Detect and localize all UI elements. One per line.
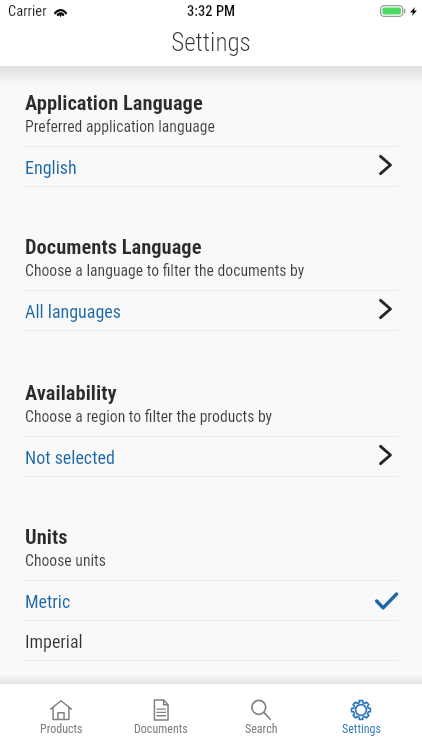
staticText: Settings	[342, 722, 381, 736]
staticText: Carrier	[8, 3, 47, 20]
button[interactable]: Products	[14, 684, 108, 750]
staticText: Documents	[134, 722, 188, 736]
button[interactable]: Not selected	[0, 437, 422, 477]
other: Open English	[379, 155, 392, 175]
staticText: Settings	[0, 28, 422, 57]
staticText: Choose a region to filter the products b…	[25, 407, 273, 425]
other: Open Not selected	[379, 445, 392, 465]
staticText: English	[25, 157, 77, 178]
button[interactable]: Documents	[114, 684, 208, 750]
other: Selected	[376, 593, 397, 609]
staticText: All languages	[25, 301, 121, 322]
staticText: Availability	[25, 381, 117, 405]
button[interactable]: Imperial	[0, 621, 422, 661]
staticText: Choose units	[25, 551, 106, 569]
button[interactable]: Search	[214, 684, 308, 750]
button[interactable]: Metric	[0, 581, 422, 621]
staticText: Search	[245, 722, 278, 736]
staticText: 3:32 PM	[187, 3, 236, 20]
staticText: Not selected	[25, 447, 115, 468]
staticText: Choose a language to filter the document…	[25, 261, 305, 279]
staticText: Units	[25, 525, 68, 549]
button[interactable]: English	[0, 147, 422, 187]
button[interactable]: Settings	[314, 684, 408, 750]
staticText: Metric	[25, 591, 71, 612]
staticText: Products	[40, 722, 83, 736]
staticText: Documents Language	[25, 235, 202, 259]
staticText: Imperial	[25, 631, 83, 652]
other: Open All languages	[379, 299, 392, 319]
button[interactable]: All languages	[0, 291, 422, 331]
staticText: Application Language	[25, 91, 203, 115]
staticText: Preferred application language	[25, 117, 215, 135]
